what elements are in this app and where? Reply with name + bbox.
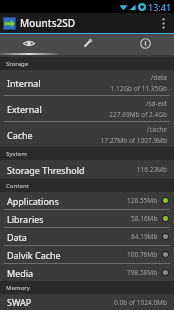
staticText: 58.16Mb bbox=[131, 214, 158, 223]
button[interactable]: Storage Threshold bbox=[0, 160, 174, 179]
staticText: /sd-ext bbox=[146, 99, 167, 108]
button[interactable]: Internal bbox=[0, 70, 174, 95]
staticText: 17.27Mb of 1007.9Mb bbox=[100, 136, 167, 145]
button[interactable]: More options bbox=[155, 13, 171, 33]
staticText: 100.76Mb bbox=[127, 250, 158, 259]
staticText: 116.23Mb bbox=[136, 165, 167, 174]
button[interactable]: Data bbox=[0, 228, 174, 245]
staticText: 227.69Mb of 2.4Gb bbox=[109, 110, 167, 119]
staticText: Internal bbox=[7, 77, 110, 89]
staticText: Storage bbox=[6, 60, 29, 68]
staticText: Media bbox=[7, 267, 127, 279]
button[interactable]: Cache bbox=[0, 122, 174, 147]
staticText: Storage Threshold bbox=[7, 164, 136, 176]
button[interactable]: Status bbox=[0, 34, 58, 53]
staticText: System bbox=[6, 150, 27, 158]
staticText: /data bbox=[150, 73, 167, 82]
staticText: 1.12Gb of 11.35Gb bbox=[110, 84, 167, 93]
staticText: Libraries bbox=[7, 213, 131, 225]
button[interactable]: Info bbox=[116, 34, 174, 53]
staticText: External bbox=[7, 103, 109, 115]
staticText: Memory bbox=[6, 284, 31, 292]
staticText: 798.58Mb bbox=[127, 268, 158, 277]
staticText: Data bbox=[7, 231, 131, 243]
staticText: 126.55Mb bbox=[127, 196, 158, 205]
staticText: Cache bbox=[7, 129, 100, 141]
button[interactable]: Dalvik Cache bbox=[0, 246, 174, 263]
staticText: Content bbox=[6, 182, 30, 190]
staticText: /cache bbox=[147, 125, 167, 134]
button[interactable]: External bbox=[0, 96, 174, 121]
staticText: 13:41 bbox=[148, 1, 172, 13]
staticText: Dalvik Cache bbox=[7, 249, 127, 261]
staticText: Applications bbox=[7, 195, 127, 207]
button[interactable]: Libraries bbox=[0, 210, 174, 227]
staticText: 84.19Mb bbox=[131, 232, 158, 241]
button[interactable]: SWAP bbox=[0, 294, 174, 310]
button[interactable]: Media bbox=[0, 264, 174, 281]
staticText: Mounts2SD bbox=[20, 16, 155, 30]
staticText: 0.0b of 1024.0Mb bbox=[114, 298, 167, 307]
staticText: SWAP bbox=[7, 296, 114, 308]
button[interactable]: Applications bbox=[0, 192, 174, 209]
button[interactable]: Settings bbox=[58, 34, 116, 53]
